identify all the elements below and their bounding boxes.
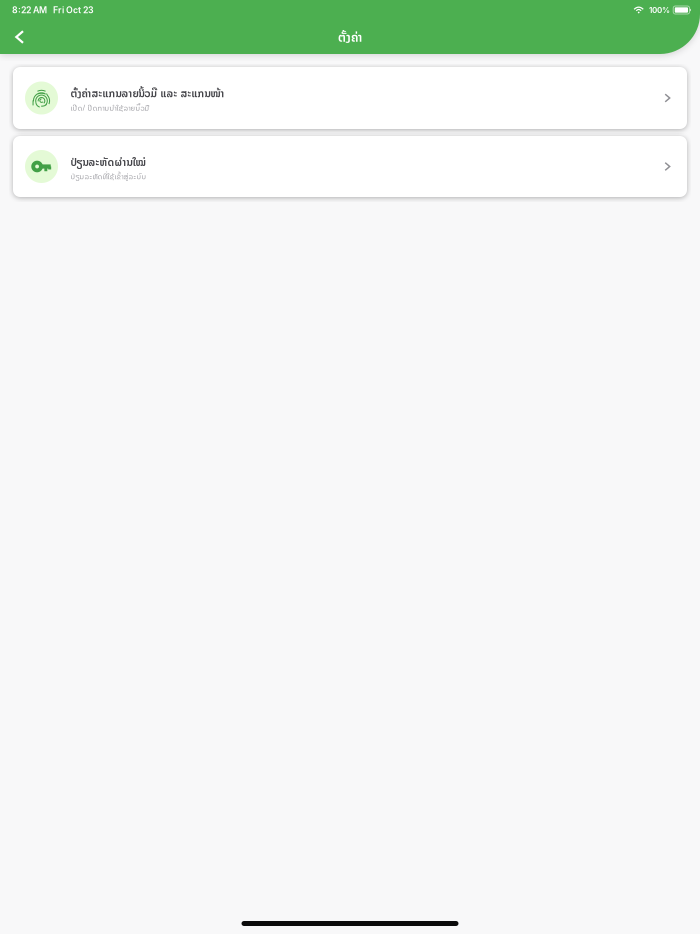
staticText: ປ່ຽນລະຫັດທີ່ໃຊ້ເຂົ້າສູ່ລະບົບ [70,171,146,181]
staticText: ປ່ຽນລະຫັດຜ່ານໃໝ່ [70,155,145,169]
staticText: 100% [649,5,670,15]
staticText: ຕັ້ງຄ່າສະແກນລາຍນິ້ວມື ແລະ ສະແກນໜ້າ [70,86,224,100]
staticText: 8:22 AM Fri Oct 23 [12,5,94,15]
staticText: ເປີດ/ ປິດການນຳໃຊ້ລາຍນິ້ວມື [70,102,149,113]
button[interactable]: ປ່ຽນລະຫັດຜ່ານໃໝ່ [13,136,687,197]
button[interactable]: Back [0,23,38,51]
button[interactable]: ຕັ້ງຄ່າສະແກນລາຍນິ້ວມື ແລະ ສະແກນໜ້າ [13,67,687,129]
staticText: ຕັ້ງຄ່າ [338,29,362,45]
